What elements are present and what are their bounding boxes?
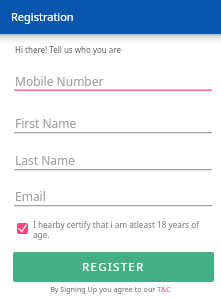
- staticText: First Name: [15, 115, 77, 131]
- staticText: I hearby certify that i am atleast 18 ye…: [33, 219, 208, 241]
- button[interactable]: REGISTER: [13, 252, 214, 282]
- button[interactable]: Registration: [0, 0, 221, 34]
- staticText: REGISTER: [82, 259, 145, 275]
- staticText: Registration: [11, 9, 74, 24]
- staticText: Last Name: [15, 152, 76, 168]
- staticText: Email: [15, 188, 46, 204]
- staticText: Hi there! Tell us who you are: [15, 44, 122, 55]
- button[interactable]: I hearby certify that i am atleast 18 ye…: [14, 219, 212, 241]
- staticText: By Signing Up you agree to our T&C: [0, 284, 221, 294]
- staticText: Mobile Number: [15, 73, 104, 89]
